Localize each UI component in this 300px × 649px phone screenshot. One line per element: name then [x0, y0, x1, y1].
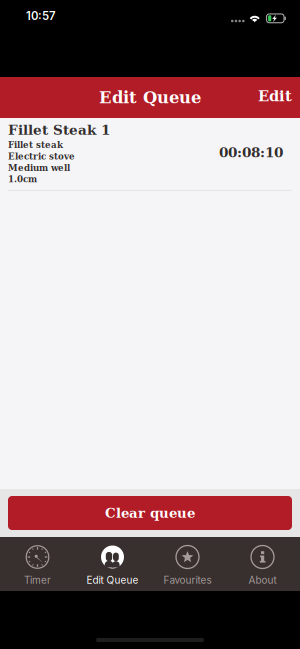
- staticText: Favourites: [163, 574, 211, 586]
- button[interactable]: Timer: [0, 537, 75, 591]
- button[interactable]: Edit: [250, 82, 300, 113]
- button[interactable]: Fillet Steak 1: [0, 118, 300, 191]
- staticText: Medium well: [8, 163, 70, 173]
- staticText: 00:08:10: [219, 144, 283, 160]
- staticText: Edit Queue: [86, 574, 138, 586]
- staticText: Edit: [258, 87, 292, 105]
- button[interactable]: Favourites: [150, 537, 225, 591]
- staticText: Fillet Steak 1: [8, 122, 110, 138]
- staticText: Fillet steak: [8, 140, 63, 150]
- staticText: Timer: [24, 574, 51, 586]
- staticText: 10:57: [26, 9, 56, 23]
- staticText: About: [248, 574, 276, 586]
- button[interactable]: Edit Queue: [75, 537, 150, 591]
- button[interactable]: About: [225, 537, 300, 591]
- staticText: Electric stove: [8, 151, 75, 161]
- staticText: 1.0cm: [8, 174, 37, 184]
- button[interactable]: Clear queue: [0, 489, 300, 537]
- staticText: Edit Queue: [99, 88, 201, 107]
- staticText: Clear queue: [105, 505, 195, 521]
